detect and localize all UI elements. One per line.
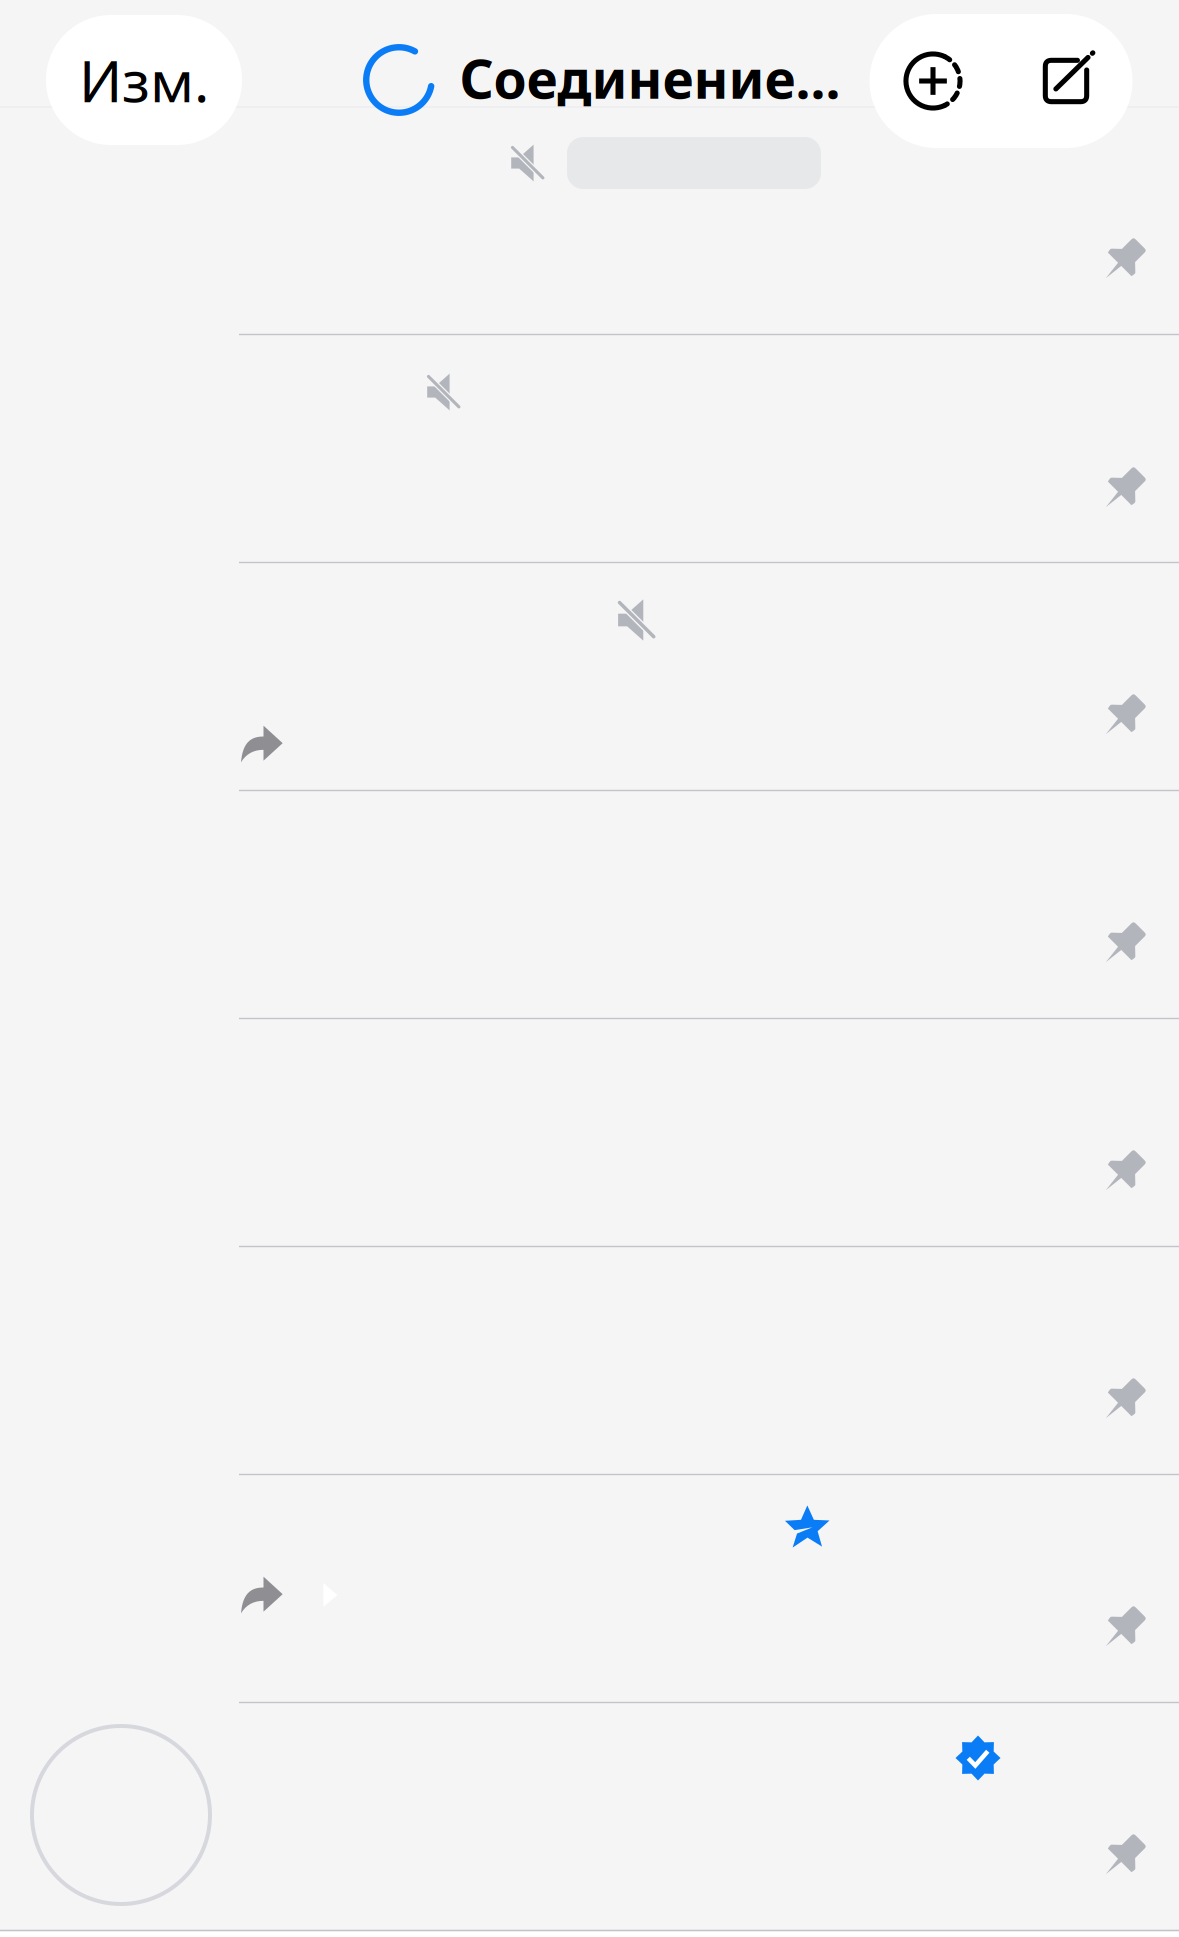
staticText: Соединение... (459, 43, 840, 113)
button[interactable]: Compose (1033, 48, 1099, 114)
button[interactable]: Add Story (900, 48, 966, 114)
staticText: Изм. (79, 42, 209, 118)
button[interactable]: Изм. (46, 15, 242, 145)
